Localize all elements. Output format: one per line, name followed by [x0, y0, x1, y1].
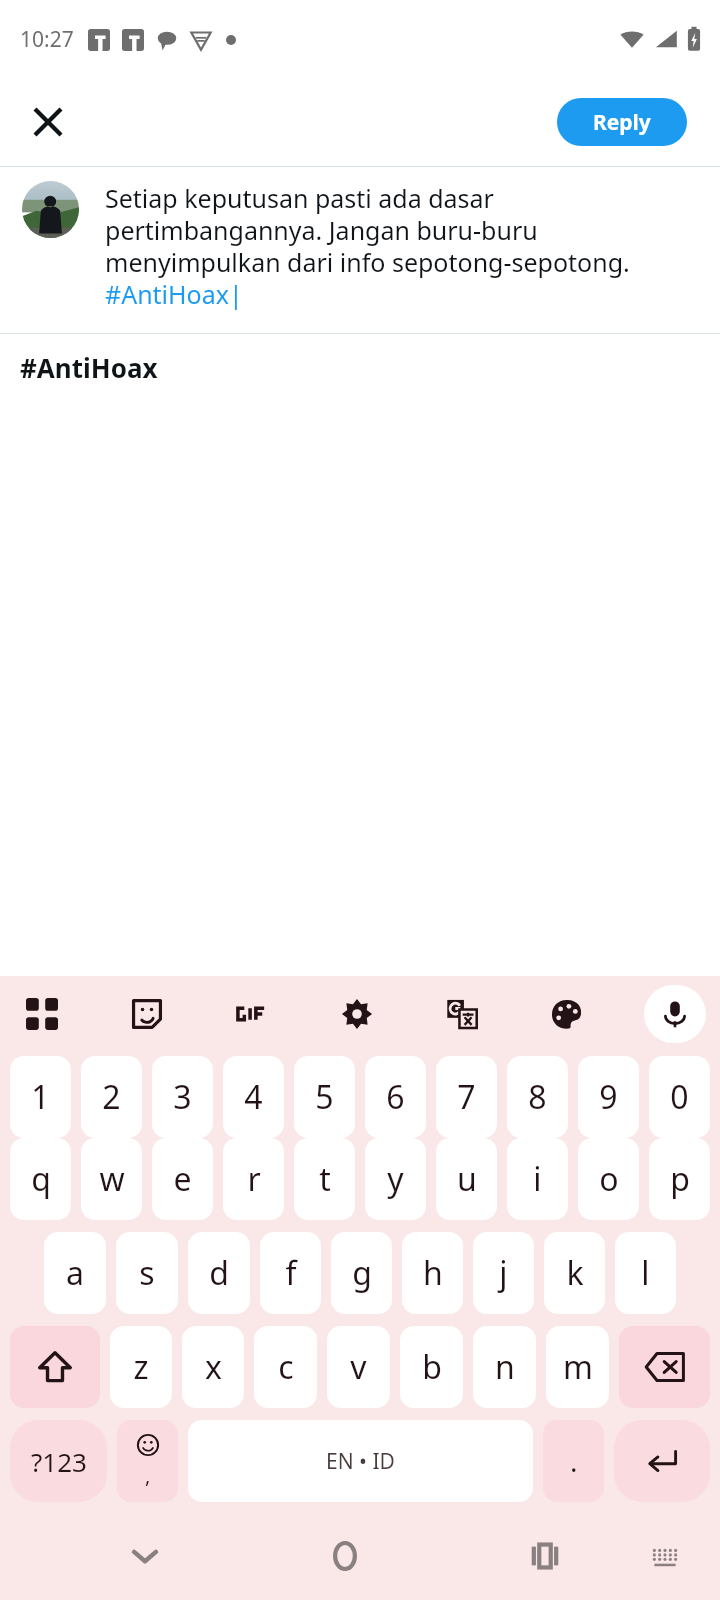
button[interactable]: c: [254, 1326, 317, 1408]
staticText: 3: [173, 1075, 192, 1119]
staticText: m: [563, 1345, 593, 1389]
button[interactable]: h: [402, 1232, 463, 1314]
button[interactable]: EN • ID: [188, 1420, 533, 1502]
staticText: 2: [102, 1075, 121, 1119]
staticText: 10:27: [20, 25, 74, 54]
button[interactable]: 4: [223, 1056, 284, 1138]
button[interactable]: j: [473, 1232, 534, 1314]
staticText: z: [133, 1345, 149, 1389]
staticText: b: [422, 1345, 442, 1389]
staticText: p: [670, 1157, 690, 1201]
staticText: ,: [145, 1462, 151, 1489]
staticText: #AntiHoax: [20, 350, 158, 385]
staticText: w: [99, 1157, 125, 1201]
button[interactable]: Backspace: [619, 1326, 710, 1408]
button[interactable]: 9: [578, 1056, 639, 1138]
button[interactable]: GIF: [224, 986, 280, 1042]
staticText: 4: [244, 1075, 263, 1119]
button[interactable]: Back: [110, 1521, 180, 1591]
button[interactable]: Emoji: [117, 1420, 178, 1502]
button[interactable]: 6: [365, 1056, 426, 1138]
button[interactable]: q: [10, 1138, 71, 1220]
staticText: i: [533, 1157, 542, 1201]
button[interactable]: 3: [152, 1056, 213, 1138]
button[interactable]: w: [81, 1138, 142, 1220]
button[interactable]: s: [116, 1232, 178, 1314]
staticText: v: [350, 1345, 367, 1389]
staticText: 9: [599, 1075, 618, 1119]
button[interactable]: f: [260, 1232, 321, 1314]
button[interactable]: Close: [18, 92, 78, 152]
staticText: o: [599, 1157, 619, 1201]
staticText: Reply: [593, 108, 651, 137]
button[interactable]: Voice input: [644, 985, 706, 1043]
button[interactable]: .: [543, 1420, 604, 1502]
button[interactable]: l: [615, 1232, 676, 1314]
button[interactable]: Enter: [614, 1420, 710, 1502]
button[interactable]: k: [544, 1232, 605, 1314]
button[interactable]: i: [507, 1138, 568, 1220]
staticText: u: [457, 1157, 477, 1201]
button[interactable]: p: [649, 1138, 710, 1220]
button[interactable]: g: [331, 1232, 392, 1314]
button[interactable]: t: [294, 1138, 355, 1220]
staticText: f: [285, 1251, 297, 1295]
button[interactable]: a: [44, 1232, 106, 1314]
button[interactable]: Reply: [557, 98, 687, 146]
staticText: x: [205, 1345, 222, 1389]
button[interactable]: Shift: [10, 1326, 100, 1408]
button[interactable]: Settings: [329, 986, 385, 1042]
staticText: EN • ID: [326, 1447, 395, 1476]
button[interactable]: u: [436, 1138, 497, 1220]
button[interactable]: d: [188, 1232, 250, 1314]
button[interactable]: 0: [649, 1056, 710, 1138]
staticText: .: [570, 1442, 578, 1480]
button[interactable]: 1: [10, 1056, 71, 1138]
staticText: 1: [31, 1075, 50, 1119]
staticText: l: [641, 1251, 650, 1295]
staticText: d: [209, 1251, 229, 1295]
button[interactable]: v: [327, 1326, 390, 1408]
button[interactable]: Translate: [434, 986, 490, 1042]
button[interactable]: b: [400, 1326, 463, 1408]
staticText: j: [499, 1251, 508, 1295]
staticText: n: [495, 1345, 515, 1389]
button[interactable]: #AntiHoax: [0, 334, 720, 400]
staticText: ?123: [31, 1444, 87, 1479]
button[interactable]: Setiap keputusan pasti ada dasar pertimb…: [105, 181, 702, 311]
staticText: e: [173, 1157, 192, 1201]
staticText: a: [66, 1251, 84, 1295]
button[interactable]: Stickers: [119, 986, 175, 1042]
staticText: y: [387, 1157, 404, 1201]
button[interactable]: Symbols: [14, 986, 70, 1042]
button[interactable]: n: [473, 1326, 536, 1408]
staticText: c: [278, 1345, 294, 1389]
staticText: 6: [386, 1075, 405, 1119]
staticText: s: [139, 1251, 155, 1295]
staticText: 0: [670, 1075, 689, 1119]
button[interactable]: Theme: [539, 986, 595, 1042]
button[interactable]: Home: [310, 1521, 380, 1591]
button[interactable]: 2: [81, 1056, 142, 1138]
button[interactable]: Hide keyboard: [630, 1521, 700, 1591]
button[interactable]: x: [182, 1326, 244, 1408]
button[interactable]: y: [365, 1138, 426, 1220]
staticText: q: [31, 1157, 51, 1201]
button[interactable]: 7: [436, 1056, 497, 1138]
staticText: k: [566, 1251, 584, 1295]
button[interactable]: 8: [507, 1056, 568, 1138]
button[interactable]: 5: [294, 1056, 355, 1138]
button[interactable]: r: [223, 1138, 284, 1220]
button[interactable]: ?123: [10, 1420, 107, 1502]
staticText: t: [319, 1157, 331, 1201]
staticText: Setiap keputusan pasti ada dasar pertimb…: [105, 181, 702, 311]
button[interactable]: o: [578, 1138, 639, 1220]
button[interactable]: m: [546, 1326, 609, 1408]
staticText: g: [352, 1251, 372, 1295]
button[interactable]: z: [110, 1326, 172, 1408]
button[interactable]: Recents: [510, 1521, 580, 1591]
staticText: 7: [457, 1075, 476, 1119]
button[interactable]: e: [152, 1138, 213, 1220]
button[interactable]: [22, 181, 79, 238]
staticText: 5: [315, 1075, 334, 1119]
